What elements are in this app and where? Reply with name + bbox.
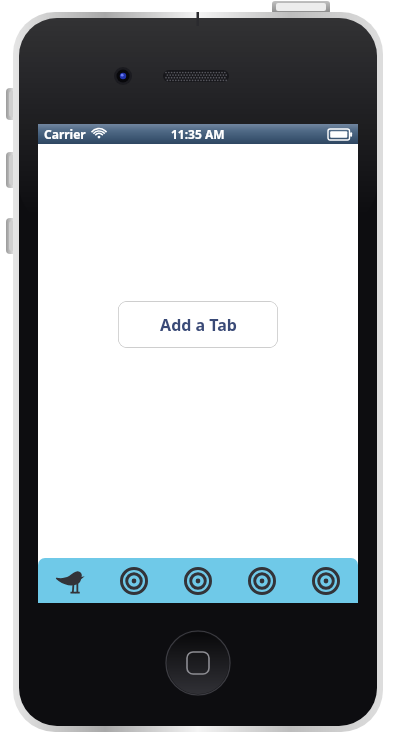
staticText: Carrier xyxy=(44,126,86,142)
button[interactable]: Tab 1 xyxy=(102,558,166,603)
button[interactable]: Tab 2 xyxy=(166,558,230,603)
staticText: Add a Tab xyxy=(160,314,237,336)
button[interactable]: Pigeon tab xyxy=(38,558,102,603)
staticText: 11:35 AM xyxy=(171,126,225,142)
button[interactable]: Tab 3 xyxy=(230,558,294,603)
button[interactable]: Tab 4 xyxy=(294,558,358,603)
button[interactable]: Add a Tab xyxy=(118,301,278,348)
